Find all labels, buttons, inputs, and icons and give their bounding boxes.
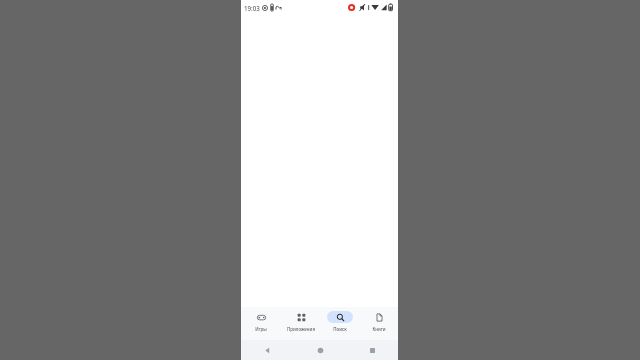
staticText: Игры (255, 326, 267, 332)
button[interactable]: Поиск (320, 307, 359, 340)
button[interactable]: Back (241, 340, 294, 360)
staticText: Поиск (333, 326, 347, 332)
button[interactable]: Книги (359, 307, 398, 340)
button[interactable]: Игры (241, 307, 281, 340)
button[interactable]: Recents (346, 340, 398, 360)
button[interactable]: Приложения (281, 307, 320, 340)
button[interactable]: Home (294, 340, 346, 360)
staticText: Приложения (287, 326, 315, 332)
staticText: 19:03 (244, 4, 260, 12)
staticText: Книги (372, 326, 386, 332)
